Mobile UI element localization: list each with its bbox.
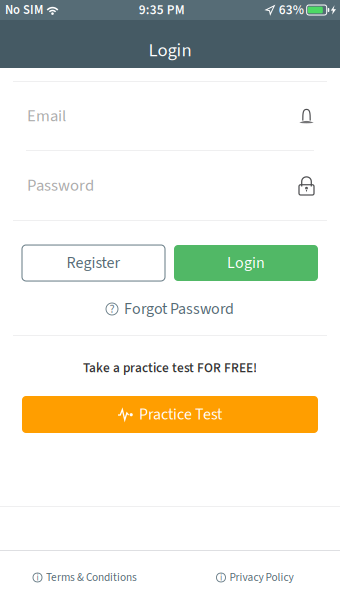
staticText: Register <box>66 252 120 274</box>
staticText: Login <box>148 37 191 64</box>
staticText: 63% <box>279 0 304 19</box>
staticText: No SIM <box>5 1 43 19</box>
staticText: ? <box>109 300 114 318</box>
button[interactable]: Register <box>22 245 165 281</box>
button[interactable]: i <box>0 551 170 604</box>
button[interactable]: Password <box>0 151 340 220</box>
button[interactable]: i <box>170 551 340 604</box>
staticText: Take a practice test FOR FREE! <box>83 358 257 377</box>
staticText: Login <box>227 252 265 274</box>
staticText: Terms & Conditions <box>46 569 137 585</box>
staticText: 9:35 PM <box>139 0 185 19</box>
staticText: i <box>220 571 222 584</box>
staticText: Privacy Policy <box>229 569 293 585</box>
button[interactable]: Email <box>0 82 340 150</box>
button[interactable]: Practice Test <box>22 396 318 433</box>
staticText: Password <box>27 174 94 197</box>
staticText: Email <box>27 104 66 128</box>
staticText: i <box>36 571 38 584</box>
button[interactable]: Login <box>174 245 318 281</box>
staticText: Forgot Password <box>124 298 234 320</box>
staticText: Practice Test <box>139 403 222 426</box>
button[interactable]: ? <box>0 298 340 320</box>
